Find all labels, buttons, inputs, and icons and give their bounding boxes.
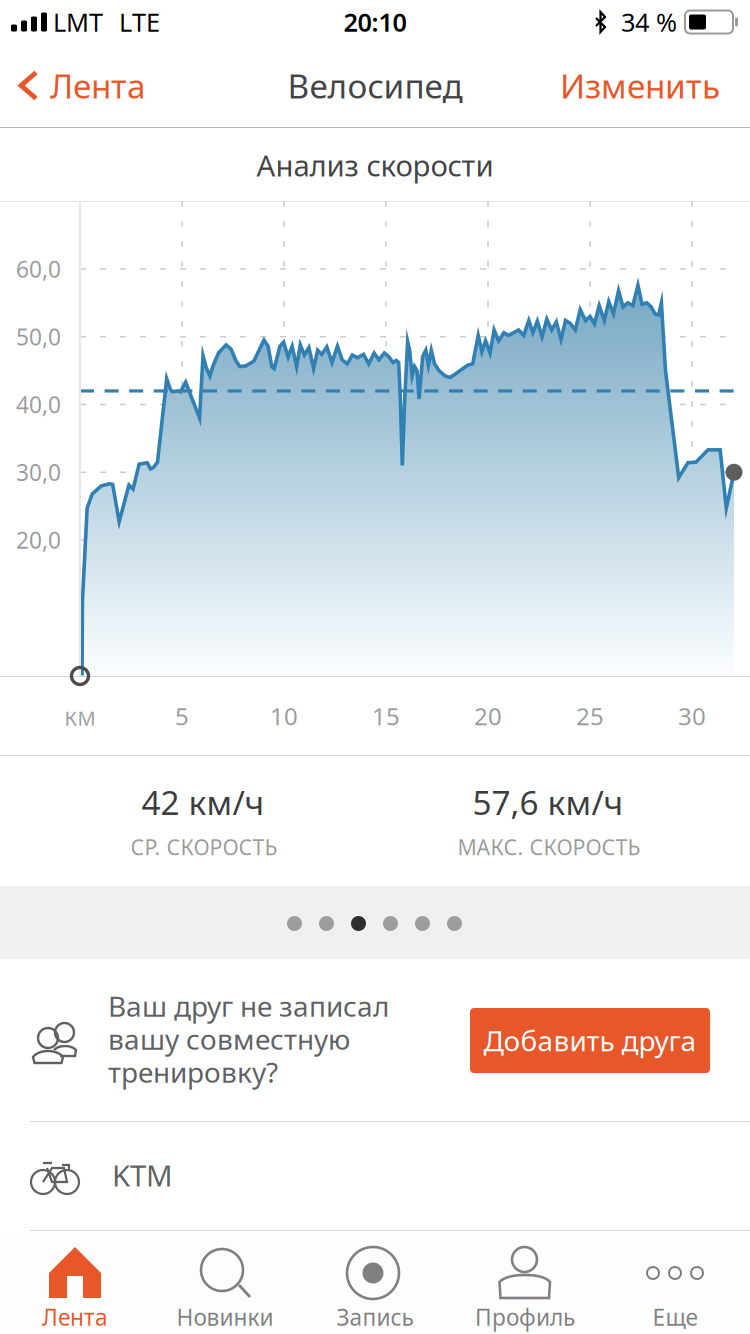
staticText: Еще [652,1302,697,1332]
staticText: 30 [678,700,706,732]
button[interactable]: Запись [300,1235,450,1332]
staticText: МАКС. СКОРОСТЬ [457,833,640,861]
button[interactable]: Лента [0,44,160,127]
button[interactable]: Профиль [450,1235,600,1332]
staticText: Лента [42,1302,108,1332]
button[interactable]: Изменить [546,44,750,127]
staticText: Добавить друга [483,1022,696,1059]
staticText: Новинки [176,1302,273,1332]
staticText: 15 [372,700,400,732]
staticText: Изменить [560,63,720,108]
staticText: 20 [474,700,502,732]
staticText: Запись [336,1302,413,1332]
staticText: 40,0 [16,389,61,419]
staticText: 50,0 [16,322,61,352]
staticText: вашу совместную [108,1020,350,1058]
staticText: 20:10 [343,5,406,39]
button[interactable]: Новинки [150,1235,300,1332]
staticText: LMT [53,5,103,39]
staticText: 5 [175,700,189,732]
staticText: 30,0 [16,457,61,487]
button[interactable]: KTM [0,1122,750,1230]
button[interactable]: Добавить друга [470,1008,710,1073]
staticText: 42 км/ч [141,780,264,824]
staticText: 60,0 [16,254,61,284]
staticText: Анализ скорости [256,145,493,184]
staticText: KTM [112,1155,173,1194]
staticText: КМ [64,705,95,731]
staticText: 25 [576,700,604,732]
staticText: 34 % [621,5,677,39]
staticText: Велосипед [287,63,462,108]
button[interactable]: Лента [0,1235,150,1332]
staticText: 10 [270,700,298,732]
staticText: Профиль [475,1302,575,1332]
staticText: Ваш друг не записал [108,987,389,1025]
staticText: Лента [50,63,146,108]
staticText: 57,6 км/ч [472,780,623,824]
staticText: 20,0 [16,525,61,555]
staticText: СР. СКОРОСТЬ [130,833,277,861]
button[interactable]: Еще [600,1235,750,1332]
staticText: LTE [119,5,160,39]
staticText: тренировку? [108,1053,278,1091]
